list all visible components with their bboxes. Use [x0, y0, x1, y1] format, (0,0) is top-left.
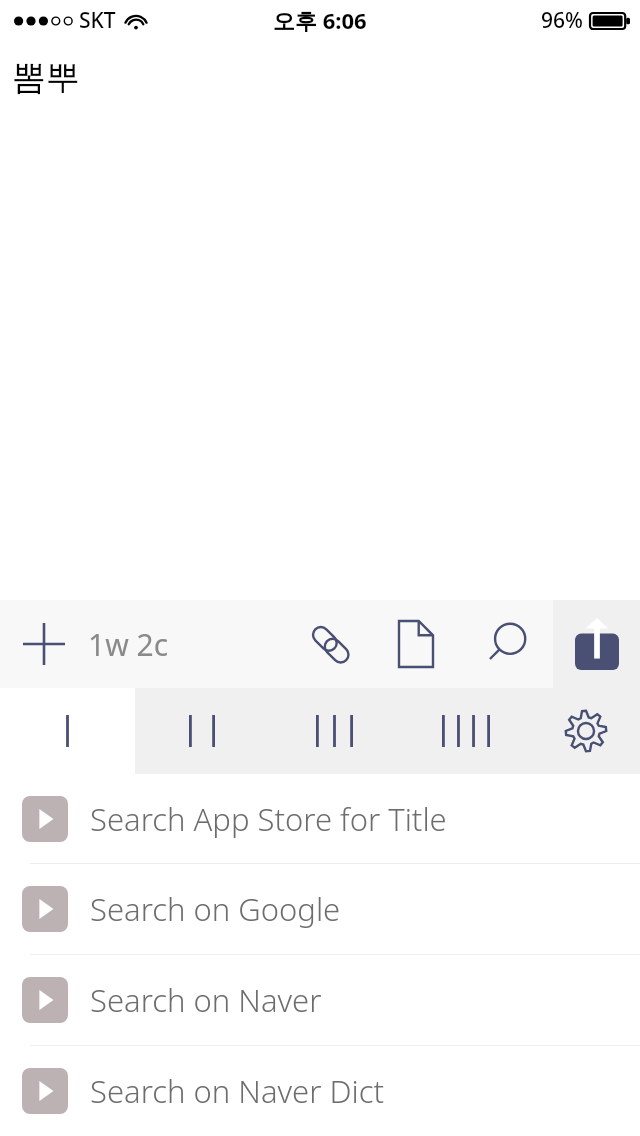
button[interactable]: Tab 1 — [0, 688, 135, 774]
staticText: Search on Naver — [90, 979, 322, 1021]
staticText: 96% — [541, 6, 583, 35]
staticText: 오후 6:06 — [273, 5, 367, 35]
button[interactable]: 1w 2c — [88, 600, 248, 688]
button[interactable]: Search — [459, 600, 553, 688]
staticText: Search App Store for Title — [90, 798, 447, 840]
staticText: SKT — [79, 6, 116, 35]
button[interactable]: Share — [553, 600, 640, 688]
button[interactable]: Tab 3 — [268, 688, 400, 774]
button[interactable]: Tab 4 — [400, 688, 532, 774]
button[interactable]: Link — [287, 600, 373, 688]
staticText: 뽐뿌 — [12, 56, 80, 99]
button[interactable]: Add — [0, 600, 88, 688]
staticText: 1w 2c — [88, 624, 169, 665]
button[interactable]: Search on Naver — [0, 955, 640, 1045]
button[interactable]: Search App Store for Title — [0, 774, 640, 863]
staticText: Search on Google — [90, 888, 341, 930]
staticText: Search on Naver Dict — [90, 1070, 384, 1112]
button[interactable]: Document — [373, 600, 459, 688]
button[interactable]: Settings — [532, 688, 640, 774]
button[interactable]: Tab 2 — [135, 688, 268, 774]
button[interactable]: Search on Google — [0, 864, 640, 954]
button[interactable]: Search on Naver Dict — [0, 1046, 640, 1136]
